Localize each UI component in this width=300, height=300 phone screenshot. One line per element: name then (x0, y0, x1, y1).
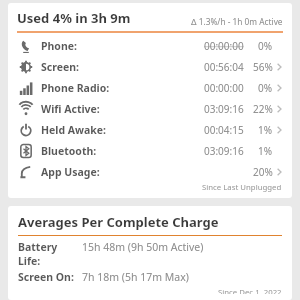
staticText: Held Awake: (41, 123, 107, 137)
staticText: App Usage: (41, 165, 100, 179)
staticText: 0% (258, 39, 273, 53)
other: Phone (19, 39, 33, 53)
staticText: 00:00:00 (204, 39, 244, 53)
other: Wifi Active (19, 102, 33, 116)
staticText: Phone: (41, 39, 77, 53)
staticText: 7h 18m (5h 17m Max) (82, 270, 189, 284)
staticText: 1% (258, 123, 273, 137)
other: Screen (19, 60, 33, 74)
staticText: ∆ 1.3%/h - 1h 0m Active (191, 16, 283, 27)
button[interactable]: Bluetooth (8, 140, 292, 161)
button[interactable]: Phone Radio (8, 77, 292, 98)
other: Bluetooth (19, 144, 33, 158)
staticText: 22% (253, 102, 273, 116)
staticText: Bluetooth: (41, 144, 97, 158)
button[interactable]: Averages Per Complete Charge (8, 206, 292, 300)
button[interactable]: Held Awake (8, 119, 292, 140)
button[interactable]: Screen (8, 56, 292, 77)
staticText: 1% (258, 144, 273, 158)
other: App Usage (19, 165, 33, 179)
button[interactable]: App Usage (8, 161, 292, 182)
staticText: Since Dec 1, 2022 (218, 287, 282, 294)
staticText: Averages Per Complete Charge (18, 213, 219, 231)
staticText: 00:00:00 (204, 81, 244, 95)
staticText: Wifi Active: (41, 102, 100, 116)
staticText: 56% (253, 60, 273, 74)
other: Phone Radio (19, 81, 33, 95)
staticText: Battery Life: (18, 240, 82, 268)
staticText: Phone Radio: (41, 81, 110, 95)
staticText: 00:56:04 (204, 60, 244, 74)
staticText: Used 4% in 3h 9m (17, 9, 131, 27)
staticText: Screen On: (18, 270, 74, 284)
staticText: 03:09:16 (204, 102, 244, 116)
staticText: 20% (253, 165, 273, 179)
staticText: 0% (258, 81, 273, 95)
staticText: Screen: (41, 60, 79, 74)
staticText: 03:09:16 (204, 144, 244, 158)
button[interactable]: Phone (8, 35, 292, 56)
staticText: 15h 48m (9h 50m Active) (82, 240, 204, 254)
staticText: 00:04:15 (204, 123, 244, 137)
other: Held Awake (19, 123, 33, 137)
staticText: Since Last Unplugged (202, 182, 282, 193)
button[interactable]: Wifi Active (8, 98, 292, 119)
